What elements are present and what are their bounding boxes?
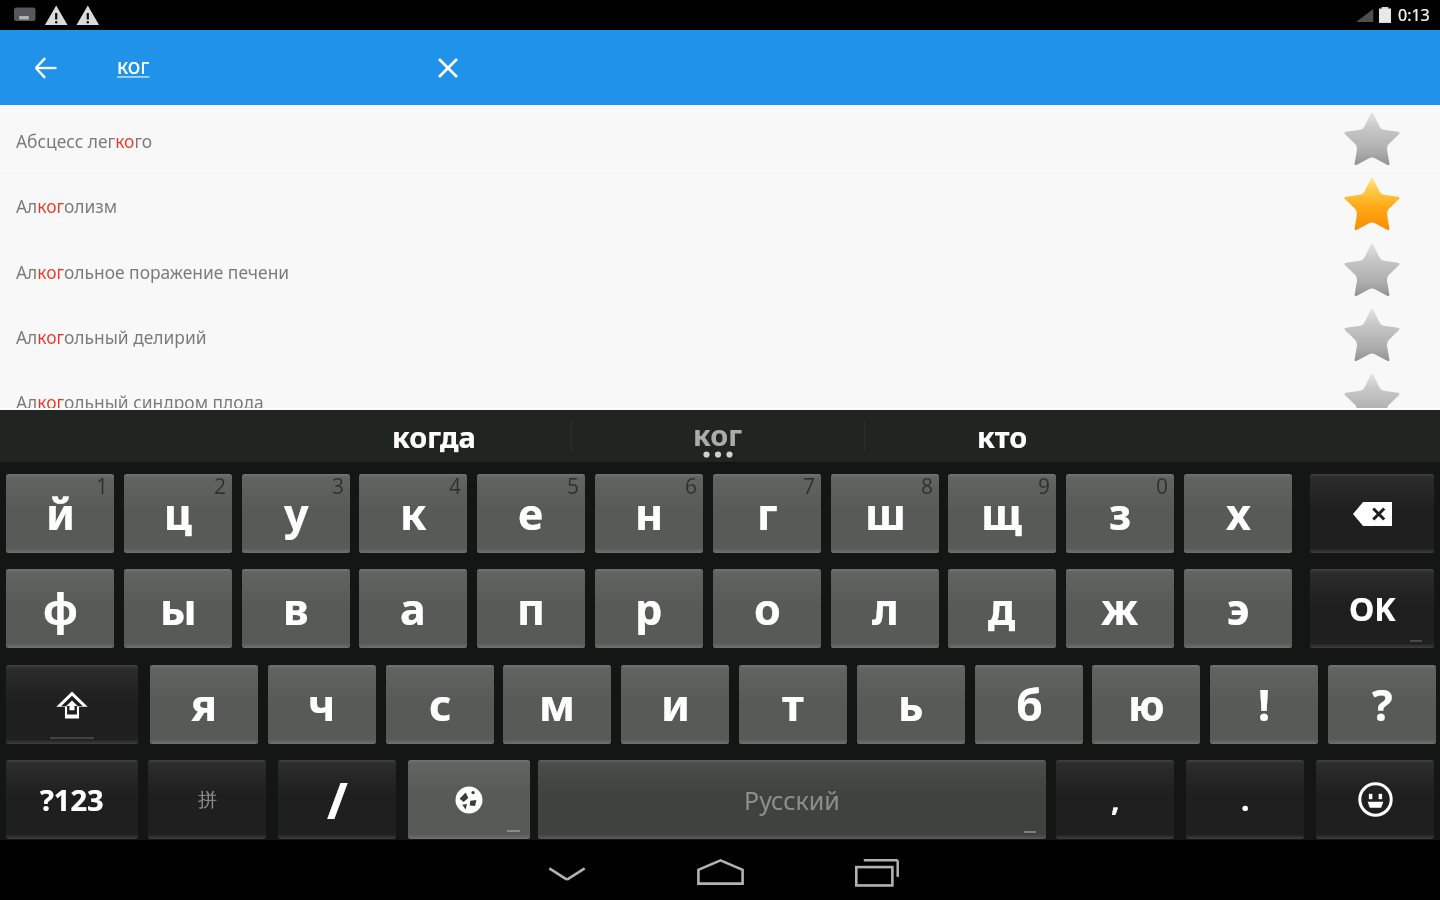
- button[interactable]: OK: [1310, 569, 1434, 648]
- staticText: ш: [865, 484, 906, 543]
- button[interactable]: ж: [1066, 569, 1174, 648]
- button[interactable]: Clear search: [422, 30, 474, 105]
- staticText: ,: [1111, 779, 1120, 820]
- button[interactable]: Toggle favourite: [1336, 237, 1408, 302]
- button[interactable]: ю: [1092, 665, 1200, 744]
- button[interactable]: р: [595, 569, 703, 648]
- button[interactable]: Алкоголизм: [0, 173, 1440, 238]
- button[interactable]: Toggle favourite: [1336, 302, 1408, 367]
- button[interactable]: в: [242, 569, 350, 648]
- button[interactable]: л: [831, 569, 939, 648]
- button[interactable]: Алкогольный делирий: [0, 304, 1440, 369]
- button[interactable]: н: [595, 474, 703, 553]
- staticText: ю: [1128, 675, 1165, 734]
- button[interactable]: п: [477, 569, 585, 648]
- button[interactable]: когда: [0, 410, 571, 462]
- button[interactable]: м: [503, 665, 611, 744]
- button[interactable]: Toggle favourite: [1336, 367, 1408, 432]
- staticText: 拼: [198, 788, 217, 812]
- staticText: 1: [96, 474, 109, 501]
- button[interactable]: с: [386, 665, 494, 744]
- staticText: 0:13: [1398, 4, 1430, 26]
- button[interactable]: э: [1184, 569, 1292, 648]
- button[interactable]: Back: [20, 30, 72, 105]
- button[interactable]: Emoji: [1316, 760, 1434, 839]
- staticText: з: [1109, 484, 1132, 543]
- staticText: Русский: [744, 783, 840, 817]
- staticText: 2: [214, 474, 227, 501]
- button[interactable]: ког: [572, 410, 864, 462]
- button[interactable]: я: [150, 665, 258, 744]
- button[interactable]: Hide keyboard: [492, 840, 642, 900]
- staticText: б: [1016, 675, 1043, 734]
- button[interactable]: Shift: [6, 665, 138, 744]
- button[interactable]: Input method: [148, 760, 266, 839]
- button[interactable]: Backspace: [1310, 474, 1434, 553]
- button[interactable]: ы: [124, 569, 232, 648]
- staticText: .: [1241, 779, 1250, 820]
- button[interactable]: ф: [6, 569, 114, 648]
- button[interactable]: т: [739, 665, 847, 744]
- staticText: я: [191, 675, 218, 734]
- staticText: 8: [921, 474, 934, 501]
- button[interactable]: д: [948, 569, 1056, 648]
- button[interactable]: ц: [124, 474, 232, 553]
- staticText: ф: [43, 579, 78, 638]
- staticText: о: [754, 579, 781, 638]
- staticText: ц: [164, 484, 192, 543]
- staticText: а: [400, 579, 426, 638]
- button[interactable]: Change language: [408, 760, 530, 839]
- button[interactable]: щ: [948, 474, 1056, 553]
- staticText: ког: [693, 415, 743, 454]
- button[interactable]: а: [359, 569, 467, 648]
- button[interactable]: кто: [865, 410, 1440, 462]
- button[interactable]: е: [477, 474, 585, 553]
- staticText: /: [327, 766, 348, 834]
- staticText: ы: [160, 579, 197, 638]
- staticText: у: [284, 484, 309, 543]
- button[interactable]: !: [1210, 665, 1318, 744]
- button[interactable]: Абсцесс легкого: [0, 108, 1440, 173]
- staticText: !: [1258, 675, 1271, 734]
- button[interactable]: к: [359, 474, 467, 553]
- staticText: Алкогольный синдром плода: [16, 390, 264, 414]
- staticText: Алкоголизм: [16, 194, 118, 218]
- staticText: и: [661, 675, 690, 734]
- button[interactable]: г: [713, 474, 821, 553]
- button[interactable]: й: [6, 474, 114, 553]
- staticText: 3: [332, 474, 345, 501]
- button[interactable]: б: [975, 665, 1083, 744]
- button[interactable]: х: [1184, 474, 1292, 553]
- button[interactable]: о: [713, 569, 821, 648]
- staticText: ?: [1372, 675, 1393, 734]
- staticText: ког: [117, 52, 150, 81]
- staticText: п: [517, 579, 545, 638]
- button[interactable]: Алкогольное поражение печени: [0, 239, 1440, 304]
- button[interactable]: ?: [1328, 665, 1436, 744]
- button[interactable]: Toggle favourite: [1336, 106, 1408, 171]
- staticText: в: [283, 579, 309, 638]
- button[interactable]: ч: [268, 665, 376, 744]
- button[interactable]: з: [1066, 474, 1174, 553]
- staticText: Абсцесс легкого: [16, 129, 153, 153]
- button[interactable]: ?123: [6, 760, 138, 839]
- staticText: ч: [308, 675, 336, 734]
- button[interactable]: Алкогольный синдром плода: [0, 369, 1440, 434]
- button[interactable]: и: [621, 665, 729, 744]
- staticText: 6: [685, 474, 698, 501]
- button[interactable]: ь: [857, 665, 965, 744]
- button[interactable]: /: [278, 760, 396, 839]
- button[interactable]: ш: [831, 474, 939, 553]
- button[interactable]: .: [1186, 760, 1304, 839]
- button[interactable]: Home: [645, 840, 795, 900]
- staticText: Алкогольный делирий: [16, 325, 207, 349]
- button[interactable]: Русский: [538, 760, 1046, 839]
- staticText: кто: [977, 417, 1028, 456]
- staticText: 7: [803, 474, 816, 501]
- staticText: г: [757, 484, 778, 543]
- button[interactable]: Toggle favourite: [1336, 171, 1408, 236]
- staticText: когда: [392, 417, 476, 456]
- button[interactable]: у: [242, 474, 350, 553]
- button[interactable]: ,: [1056, 760, 1174, 839]
- button[interactable]: Recent apps: [802, 840, 952, 900]
